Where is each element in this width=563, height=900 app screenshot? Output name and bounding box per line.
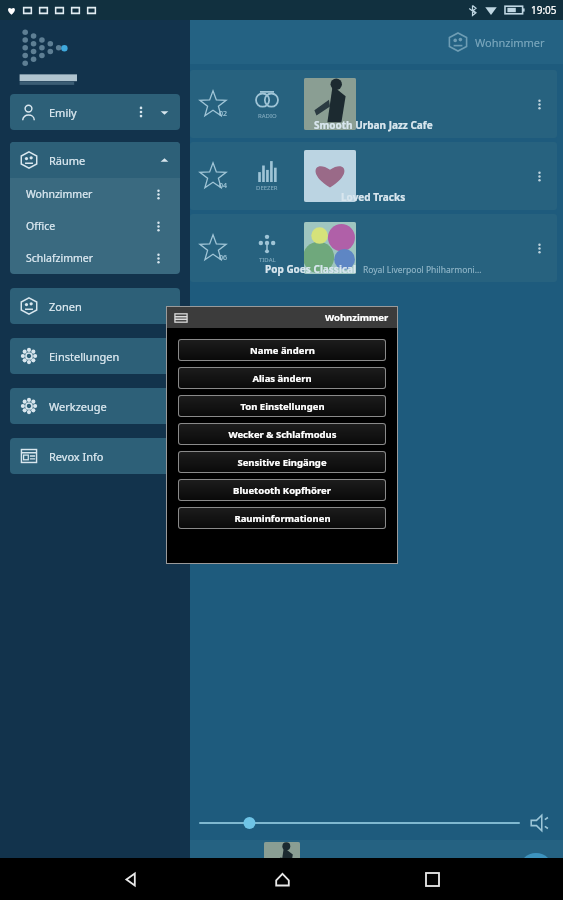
button[interactable]: Meine Favoriten [245, 842, 319, 894]
button[interactable]: Name ändern [179, 340, 385, 360]
staticText: 02 [219, 109, 228, 119]
button[interactable]: Menu [173, 310, 189, 326]
button[interactable]: Mute volume [529, 812, 551, 834]
button[interactable]: Schlafzimmer [10, 242, 180, 274]
button[interactable]: Wecker & Schlafmodus [179, 424, 385, 444]
staticText: DEEZER [256, 184, 278, 192]
button[interactable] [0, 142, 186, 210]
staticText: Sensitive Eingänge [237, 456, 327, 469]
staticText: TIDAL [259, 256, 276, 264]
button[interactable] [200, 813, 519, 833]
button[interactable]: Add favorite [519, 853, 553, 887]
button[interactable]: Rauminformationen [179, 508, 385, 528]
staticText: Pop Goes Classical [265, 262, 357, 276]
button[interactable]: Wohnzimmer [444, 28, 549, 56]
staticText: Wohnzimmer [26, 187, 93, 201]
staticText: Wecker & Schlafmodus [228, 428, 337, 441]
staticText: Wohnzimmer [475, 35, 545, 50]
button[interactable] [0, 70, 186, 138]
button[interactable]: Wohnzimmer [10, 178, 180, 210]
button[interactable]: Zonen [10, 288, 180, 324]
button[interactable]: Räume [10, 142, 180, 178]
button[interactable]: Office [10, 210, 180, 242]
button[interactable] [0, 214, 186, 282]
staticText: Name ändern [250, 344, 315, 357]
staticText: 19:05 [531, 3, 557, 17]
staticText: Alias ändern [252, 372, 312, 385]
staticText: Revox Info [49, 449, 104, 464]
button[interactable]: 04 [190, 142, 557, 210]
button[interactable]: Revox Info [10, 438, 180, 474]
staticText: RADIO [258, 112, 277, 120]
staticText: Meine Favoriten [245, 882, 319, 894]
button[interactable]: Bluetooth Kopfhörer [179, 480, 385, 500]
staticText: Einstellungen [49, 349, 120, 364]
staticText: 04 [219, 181, 228, 191]
staticText: Royal Liverpool Philharmoni… [363, 264, 482, 276]
staticText: Office [26, 219, 56, 233]
button[interactable]: 02 [190, 70, 557, 138]
button[interactable]: Recents [412, 859, 452, 899]
button[interactable]: Home [262, 859, 302, 899]
staticText: 06 [219, 253, 228, 263]
button[interactable]: Emily [10, 94, 180, 130]
button[interactable]: Einstellungen [10, 338, 180, 374]
button[interactable]: Ton Einstellungen [179, 396, 385, 416]
staticText: Wohnzimmer [325, 311, 389, 324]
staticText: Loved Tracks [341, 190, 406, 204]
button[interactable]: Werkzeuge [10, 388, 180, 424]
button[interactable]: Sensitive Eingänge [179, 452, 385, 472]
staticText: Bluetooth Kopfhörer [233, 484, 331, 497]
staticText: Rauminformationen [234, 512, 331, 525]
button[interactable]: Back [111, 859, 151, 899]
button[interactable]: Alias ändern [179, 368, 385, 388]
staticText: Werkzeuge [49, 399, 107, 414]
staticText: Smooth Urban Jazz Cafe [314, 118, 433, 132]
staticText: Zonen [49, 299, 82, 314]
staticText: Ton Einstellungen [240, 400, 325, 413]
staticText: Schlafzimmer [26, 251, 94, 265]
staticText: Räume [49, 153, 86, 168]
button[interactable]: 06 [190, 214, 557, 282]
staticText: Emily [49, 105, 77, 120]
